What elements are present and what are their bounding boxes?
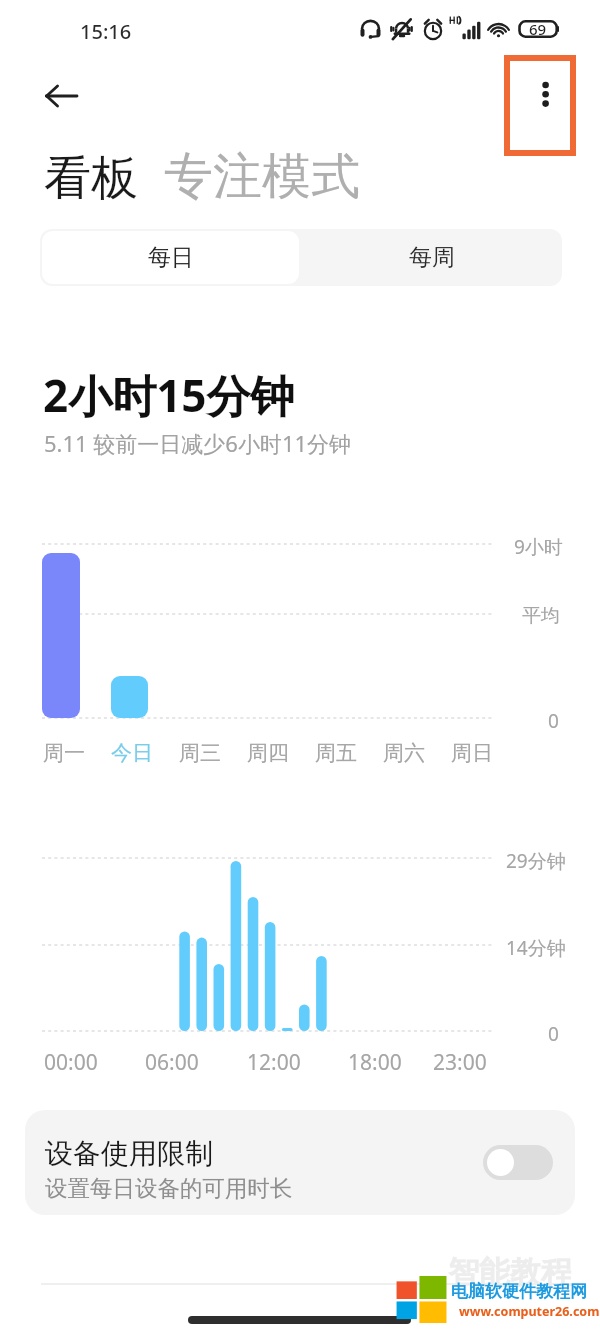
staticText: 设置每日设备的可用时长 — [45, 1174, 293, 1202]
button[interactable]: More options — [504, 55, 576, 156]
button[interactable]: 每日 — [42, 231, 299, 284]
staticText: 9小时 — [514, 534, 563, 560]
staticText: 智能教程 — [448, 1253, 572, 1292]
staticText: 周五 — [315, 740, 357, 766]
staticText: 周日 — [451, 740, 493, 766]
staticText: 看板 — [44, 149, 138, 208]
staticText: 2小时15分钟 — [43, 365, 295, 425]
staticText: 12:00 — [247, 1048, 301, 1077]
staticText: 15:16 — [80, 18, 132, 45]
staticText: 平均 — [522, 604, 560, 628]
staticText: 周一 — [43, 740, 85, 766]
staticText: 周四 — [247, 740, 289, 766]
staticText: 23:00 — [433, 1048, 487, 1077]
button[interactable]: Back — [35, 70, 87, 122]
button[interactable]: Toggle device usage limit — [483, 1145, 553, 1180]
staticText: 29分钟 — [506, 848, 566, 874]
staticText: 18:00 — [348, 1048, 402, 1077]
staticText: 0 — [548, 1021, 559, 1047]
button[interactable]: 设备使用限制 — [25, 1110, 575, 1215]
staticText: 14分钟 — [506, 935, 566, 961]
staticText: 0 — [548, 708, 559, 734]
staticText: 设备使用限制 — [45, 1136, 213, 1171]
staticText: 每日 — [148, 243, 194, 272]
staticText: 每周 — [409, 243, 455, 272]
staticText: 周三 — [179, 740, 221, 766]
staticText: 电脑软硬件教程网 — [451, 1281, 587, 1302]
staticText: 00:00 — [44, 1048, 98, 1077]
staticText: 69 — [529, 19, 547, 39]
staticText: 5.11 较前一日减少6小时11分钟 — [44, 428, 352, 458]
staticText: 06:00 — [145, 1048, 199, 1077]
staticText: 今日 — [111, 740, 153, 766]
button[interactable]: 每周 — [301, 229, 562, 286]
staticText: www.computer26.com — [459, 1303, 600, 1320]
staticText: 周六 — [383, 740, 425, 766]
staticText: 专注模式 — [164, 146, 360, 208]
